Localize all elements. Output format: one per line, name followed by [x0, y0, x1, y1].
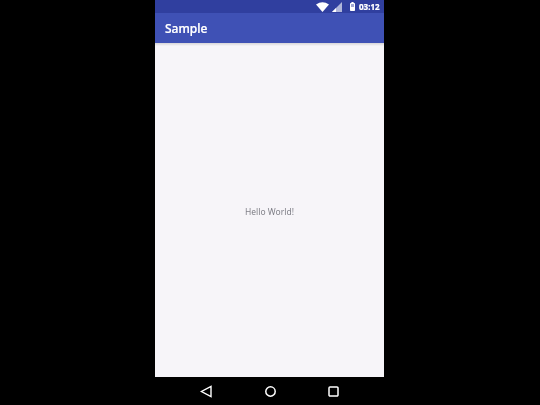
staticText: 03:12 [359, 1, 380, 12]
staticText: Hello World! [245, 206, 294, 218]
button[interactable] [319, 377, 347, 405]
button[interactable] [256, 377, 284, 405]
staticText: Sample [165, 20, 208, 36]
button[interactable] [192, 377, 220, 405]
